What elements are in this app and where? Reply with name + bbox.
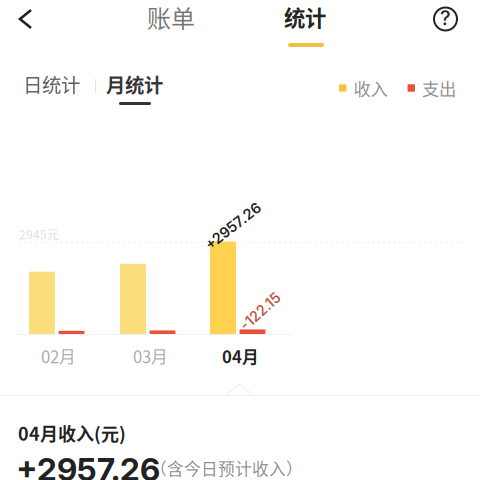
staticText: 支出 xyxy=(422,75,456,101)
button[interactable]: 统计 xyxy=(270,2,340,32)
staticText: 04月收入(元) xyxy=(18,420,126,446)
staticText: 月统计 xyxy=(106,70,163,98)
button[interactable]: Back xyxy=(2,0,50,40)
staticText: -122.15 xyxy=(236,303,285,320)
button[interactable]: Help xyxy=(423,0,468,38)
button[interactable]: 账单 xyxy=(136,2,206,32)
staticText: +2957.26 xyxy=(16,450,160,480)
staticText: +2957.26 xyxy=(200,217,266,235)
staticText: 收入 xyxy=(353,75,387,101)
staticText: 统计 xyxy=(284,2,326,32)
staticText: （含今日预计收入） xyxy=(150,456,303,480)
staticText: 03月 xyxy=(133,344,168,368)
staticText: 账单 xyxy=(147,0,195,34)
button[interactable]: 月统计 xyxy=(106,72,186,96)
staticText: 日统计 xyxy=(23,70,80,98)
staticText: 02月 xyxy=(41,344,76,368)
staticText: ? xyxy=(440,6,451,30)
button[interactable]: 日统计 xyxy=(23,73,93,95)
staticText: 04月 xyxy=(222,344,259,368)
staticText: 2945元 xyxy=(19,225,59,243)
